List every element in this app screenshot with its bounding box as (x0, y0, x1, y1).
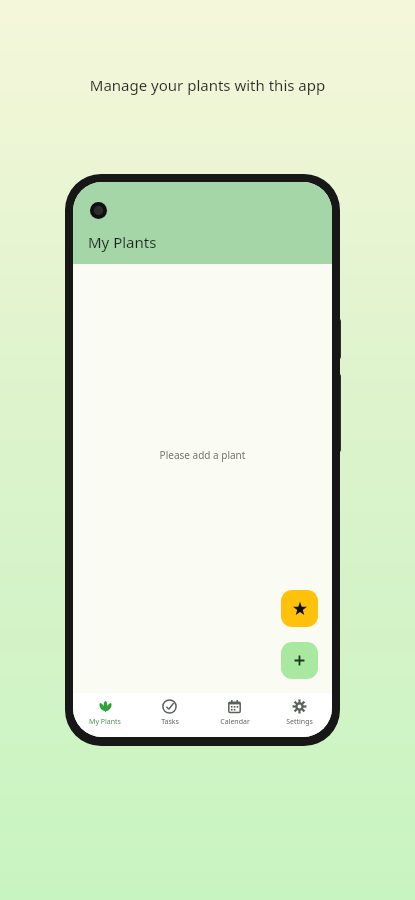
button[interactable]: Calendar (202, 693, 267, 737)
button[interactable]: Settings (267, 693, 332, 737)
staticText: Tasks (161, 717, 179, 727)
button[interactable]: My Plants (73, 693, 137, 737)
staticText: Calendar (220, 717, 250, 727)
button[interactable]: Add plant (281, 642, 318, 679)
staticText: My Plants (89, 717, 121, 727)
staticText: Manage your plants with this app (0, 75, 415, 95)
staticText: Please add a plant (73, 448, 332, 462)
staticText: My Plants (88, 232, 157, 252)
button[interactable]: Favorites (281, 590, 318, 627)
staticText: Settings (286, 717, 313, 727)
button[interactable]: Tasks (137, 693, 202, 737)
